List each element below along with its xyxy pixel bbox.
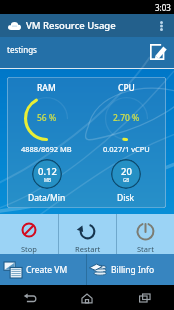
button[interactable]: Back xyxy=(17,286,41,310)
button[interactable]: 20 xyxy=(111,159,141,189)
button[interactable]: Stop xyxy=(0,214,58,254)
button[interactable]: Edit xyxy=(149,43,168,60)
button[interactable]: 0.12 xyxy=(32,159,62,189)
staticText: Start xyxy=(137,244,154,254)
staticText: Data/Min xyxy=(28,192,66,204)
staticText: 0.12 xyxy=(38,165,57,178)
button[interactable]: Restart xyxy=(59,214,116,254)
staticText: 3:03 xyxy=(155,2,171,13)
staticText: CPU xyxy=(118,82,135,94)
staticText: Restart xyxy=(75,244,101,254)
staticText: Create VM xyxy=(26,264,68,276)
staticText: RAM xyxy=(37,82,56,94)
staticText: MB xyxy=(44,177,52,183)
button[interactable]: More options xyxy=(151,16,171,36)
staticText: testings xyxy=(7,44,37,55)
staticText: 4888/8692 MB xyxy=(21,144,72,154)
button[interactable]: Recents xyxy=(133,286,157,310)
button[interactable]: Home xyxy=(75,286,99,310)
staticText: Billing Info xyxy=(111,264,155,276)
button[interactable]: Create VM xyxy=(0,254,86,285)
staticText: 20 xyxy=(121,165,132,178)
staticText: VM Resource Usage xyxy=(26,19,116,32)
staticText: 0.027/1 vCPU xyxy=(103,144,150,154)
staticText: 2.70 % xyxy=(113,112,140,124)
staticText: GB xyxy=(123,177,130,183)
staticText: 56 % xyxy=(37,112,57,124)
staticText: Stop xyxy=(21,244,37,254)
button[interactable]: Start xyxy=(117,214,174,254)
staticText: Disk xyxy=(117,192,135,204)
button[interactable]: Billing Info xyxy=(87,254,174,285)
